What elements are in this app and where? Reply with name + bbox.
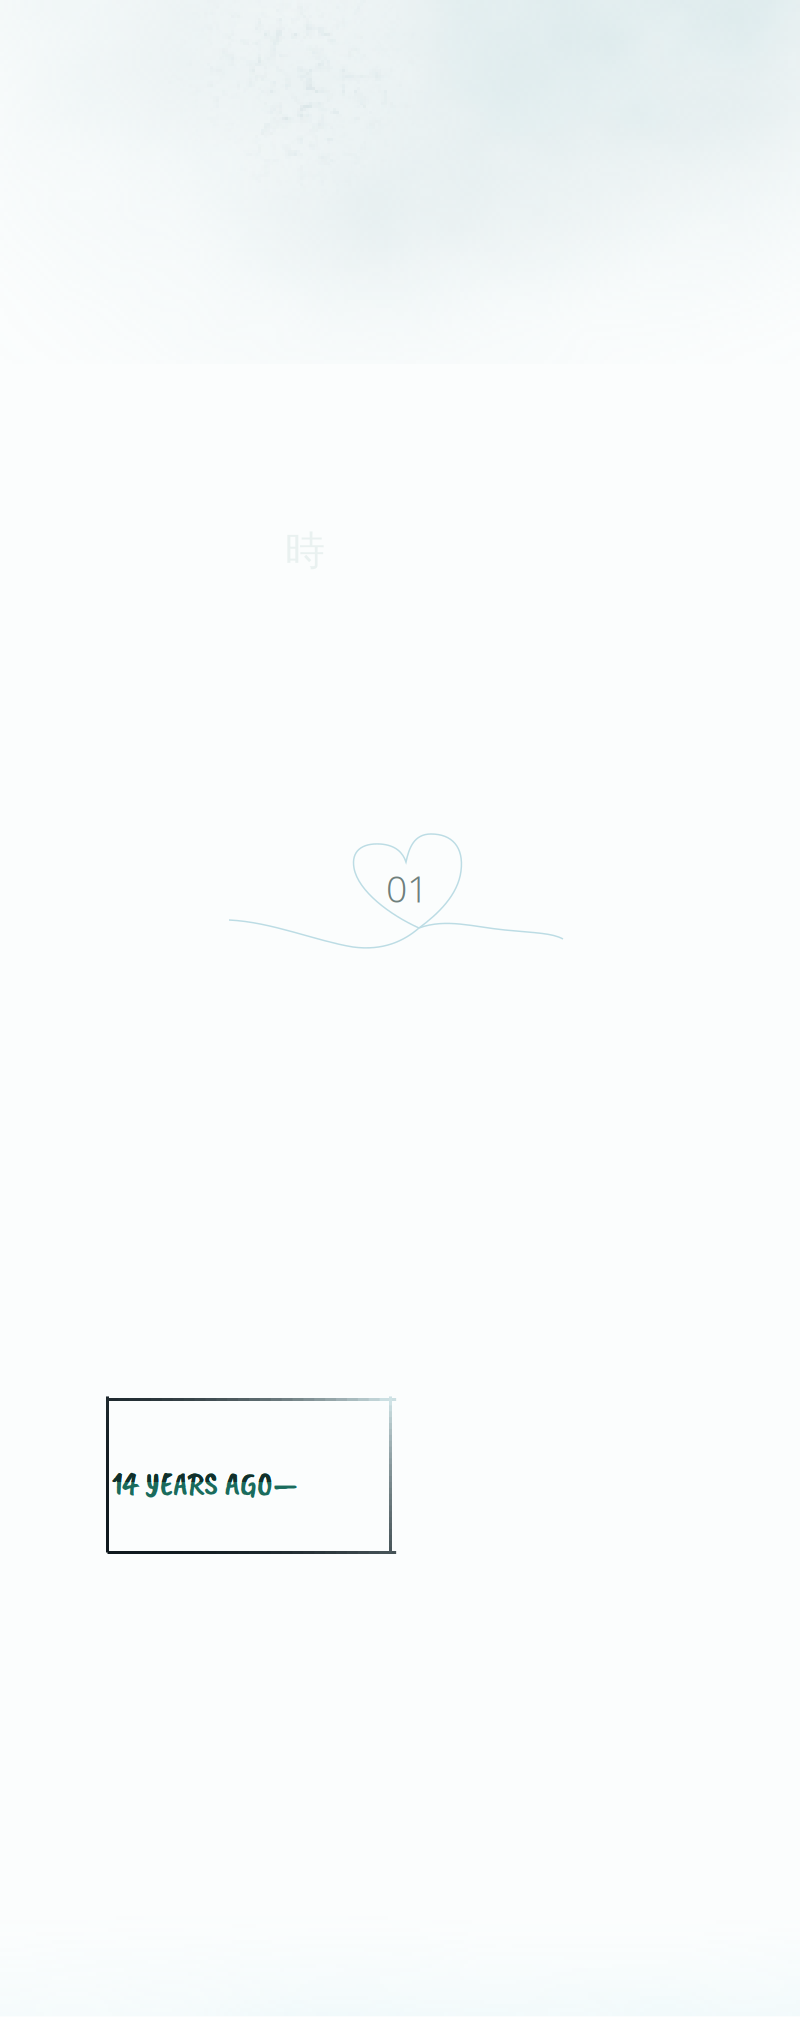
staticText: 時 <box>285 526 325 575</box>
staticText: 01 <box>386 863 428 913</box>
staticText: 14 YEARS AGO— <box>112 1464 298 1504</box>
staticText: 14 YEARS AGO— <box>112 1464 298 1504</box>
